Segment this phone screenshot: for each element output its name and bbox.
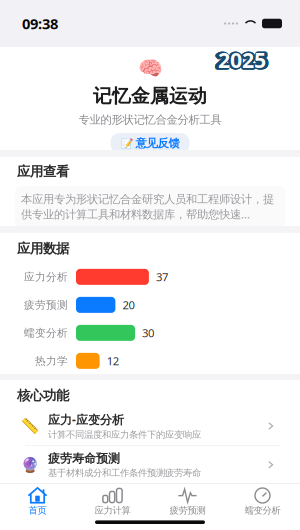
staticText: 2025 bbox=[218, 45, 266, 74]
staticText: 专业的形状记忆合金分析工具 bbox=[78, 113, 221, 127]
staticText: 热力学 bbox=[35, 354, 68, 368]
staticText: 核心功能 bbox=[17, 387, 69, 404]
staticText: 疲劳预测 bbox=[24, 298, 68, 312]
staticText: 蠕变分析 bbox=[24, 326, 68, 340]
staticText: 2025 bbox=[216, 43, 268, 73]
staticText: 应用查看 bbox=[17, 163, 69, 180]
button[interactable]: 疲劳预测 bbox=[150, 487, 225, 516]
staticText: 🧠 bbox=[137, 57, 162, 80]
staticText: 应力分析 bbox=[24, 270, 68, 284]
staticText: 2025 bbox=[217, 45, 269, 74]
staticText: 2025 bbox=[217, 46, 269, 76]
staticText: 计算不同温度和应力条件下的应变响应 bbox=[48, 429, 201, 441]
staticText: 基于材料成分和工作条件预测疲劳寿命 bbox=[48, 467, 201, 479]
staticText: 37 bbox=[156, 269, 168, 285]
staticText: 📝 bbox=[120, 137, 132, 149]
staticText: 2025 bbox=[215, 46, 267, 76]
button[interactable]: 首页 bbox=[0, 487, 75, 516]
staticText: 2025 bbox=[217, 44, 269, 74]
staticText: 2025 bbox=[214, 45, 266, 74]
button[interactable]: 蠕变分析 bbox=[225, 487, 300, 516]
button[interactable]: 📏 bbox=[0, 407, 300, 445]
staticText: 2025 bbox=[217, 44, 269, 73]
staticText: 🔮 bbox=[21, 456, 39, 473]
staticText: 蠕变分析 bbox=[244, 504, 280, 516]
staticText: 2025 bbox=[215, 44, 267, 73]
staticText: 应力-应变分析 bbox=[48, 411, 124, 428]
staticText: 2025 bbox=[217, 43, 269, 73]
button[interactable]: 📝 bbox=[110, 133, 189, 153]
staticText: 2025 bbox=[216, 46, 268, 76]
staticText: 2025 bbox=[217, 45, 269, 75]
staticText: 12 bbox=[107, 353, 119, 369]
staticText: 本应用专为形状记忆合金研究人员和工程师设计，提供专业的计算工具和材料数据库，帮助… bbox=[21, 192, 274, 222]
staticText: 意见反馈 bbox=[135, 136, 179, 150]
staticText: 应力计算 bbox=[94, 504, 130, 516]
staticText: 2025 bbox=[215, 43, 267, 73]
button[interactable]: 应力计算 bbox=[75, 487, 150, 516]
staticText: 📏 bbox=[21, 417, 39, 435]
staticText: 09:38 bbox=[22, 13, 58, 33]
staticText: 疲劳预测 bbox=[169, 504, 205, 516]
staticText: 应用数据 bbox=[17, 240, 69, 257]
button[interactable]: 🔮 bbox=[0, 446, 300, 484]
staticText: 2025 bbox=[217, 46, 269, 76]
staticText: 20 bbox=[122, 297, 134, 313]
staticText: 记忆金属运动 bbox=[93, 84, 207, 108]
staticText: 30 bbox=[142, 325, 154, 341]
staticText: 2025 bbox=[215, 46, 267, 76]
staticText: 2025 bbox=[215, 44, 267, 74]
staticText: 首页 bbox=[28, 504, 46, 516]
staticText: 疲劳寿命预测 bbox=[48, 451, 120, 466]
staticText: 2025 bbox=[215, 45, 267, 75]
